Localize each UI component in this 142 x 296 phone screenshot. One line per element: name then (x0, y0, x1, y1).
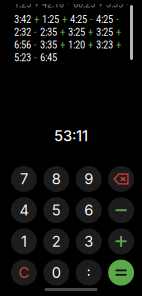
button[interactable]: 9 (76, 166, 102, 192)
button[interactable]: 5 (43, 197, 69, 223)
staticText: 6:56 (14, 39, 31, 51)
staticText: 1:25 (42, 13, 59, 25)
staticText: + (62, 13, 67, 25)
staticText: 3:25 (96, 26, 113, 38)
staticText: + (60, 26, 65, 38)
staticText: - (116, 13, 119, 25)
button[interactable]: 8 (43, 166, 69, 192)
staticText: - (34, 51, 37, 64)
staticText: - (34, 39, 37, 51)
staticText: 60:25 (73, 0, 95, 10)
button[interactable] (108, 228, 134, 254)
button[interactable]: 1 (11, 228, 37, 254)
staticText: 3:23 (96, 39, 113, 51)
staticText: 6:45 (40, 51, 57, 64)
staticText: 3:35 (40, 39, 57, 51)
staticText: 2:35 (40, 26, 57, 38)
staticText: - (67, 0, 70, 10)
staticText: 3:35 (106, 0, 123, 10)
button[interactable]: 2 (43, 228, 69, 254)
staticText: 53:11 (54, 127, 88, 145)
staticText: 4:25 (96, 13, 113, 25)
staticText: 3:42 (14, 13, 31, 25)
staticText: + (88, 26, 93, 38)
staticText: + (116, 26, 121, 38)
staticText: 0 (52, 264, 61, 281)
staticText: 4 (19, 201, 28, 219)
staticText: 2:32 (14, 26, 31, 38)
staticText: + (98, 0, 103, 10)
button[interactable]: 3 (76, 228, 102, 254)
staticText: + (60, 39, 65, 51)
staticText: 4:25 (70, 13, 87, 25)
button[interactable] (76, 260, 102, 286)
staticText: + (34, 13, 39, 25)
staticText: + (88, 39, 93, 51)
staticText: 1:25 (14, 0, 31, 10)
staticText: - (34, 26, 37, 38)
staticText: 5:23 (14, 51, 31, 64)
staticText: 1 (21, 232, 27, 250)
staticText: 9 (84, 170, 93, 188)
button[interactable] (108, 166, 134, 192)
staticText: 5 (52, 201, 61, 219)
button[interactable]: 4 (11, 197, 37, 223)
staticText: C (18, 264, 29, 281)
button[interactable]: 0 (43, 260, 69, 286)
staticText: - (126, 0, 129, 10)
staticText: + (116, 39, 121, 51)
staticText: 7 (20, 170, 28, 188)
button[interactable] (108, 197, 134, 223)
staticText: 8 (52, 170, 61, 188)
staticText: - (90, 13, 93, 25)
staticText: 42:10 (42, 0, 64, 10)
staticText: 1:20 (68, 39, 85, 51)
button[interactable]: 7 (11, 166, 37, 192)
button[interactable]: C (11, 260, 37, 286)
staticText: 6 (84, 201, 93, 219)
staticText: + (34, 0, 39, 10)
button[interactable]: 6 (76, 197, 102, 223)
staticText: 2 (52, 232, 61, 250)
staticText: 3 (84, 232, 93, 250)
button[interactable] (108, 260, 134, 286)
staticText: 3:25 (68, 26, 85, 38)
